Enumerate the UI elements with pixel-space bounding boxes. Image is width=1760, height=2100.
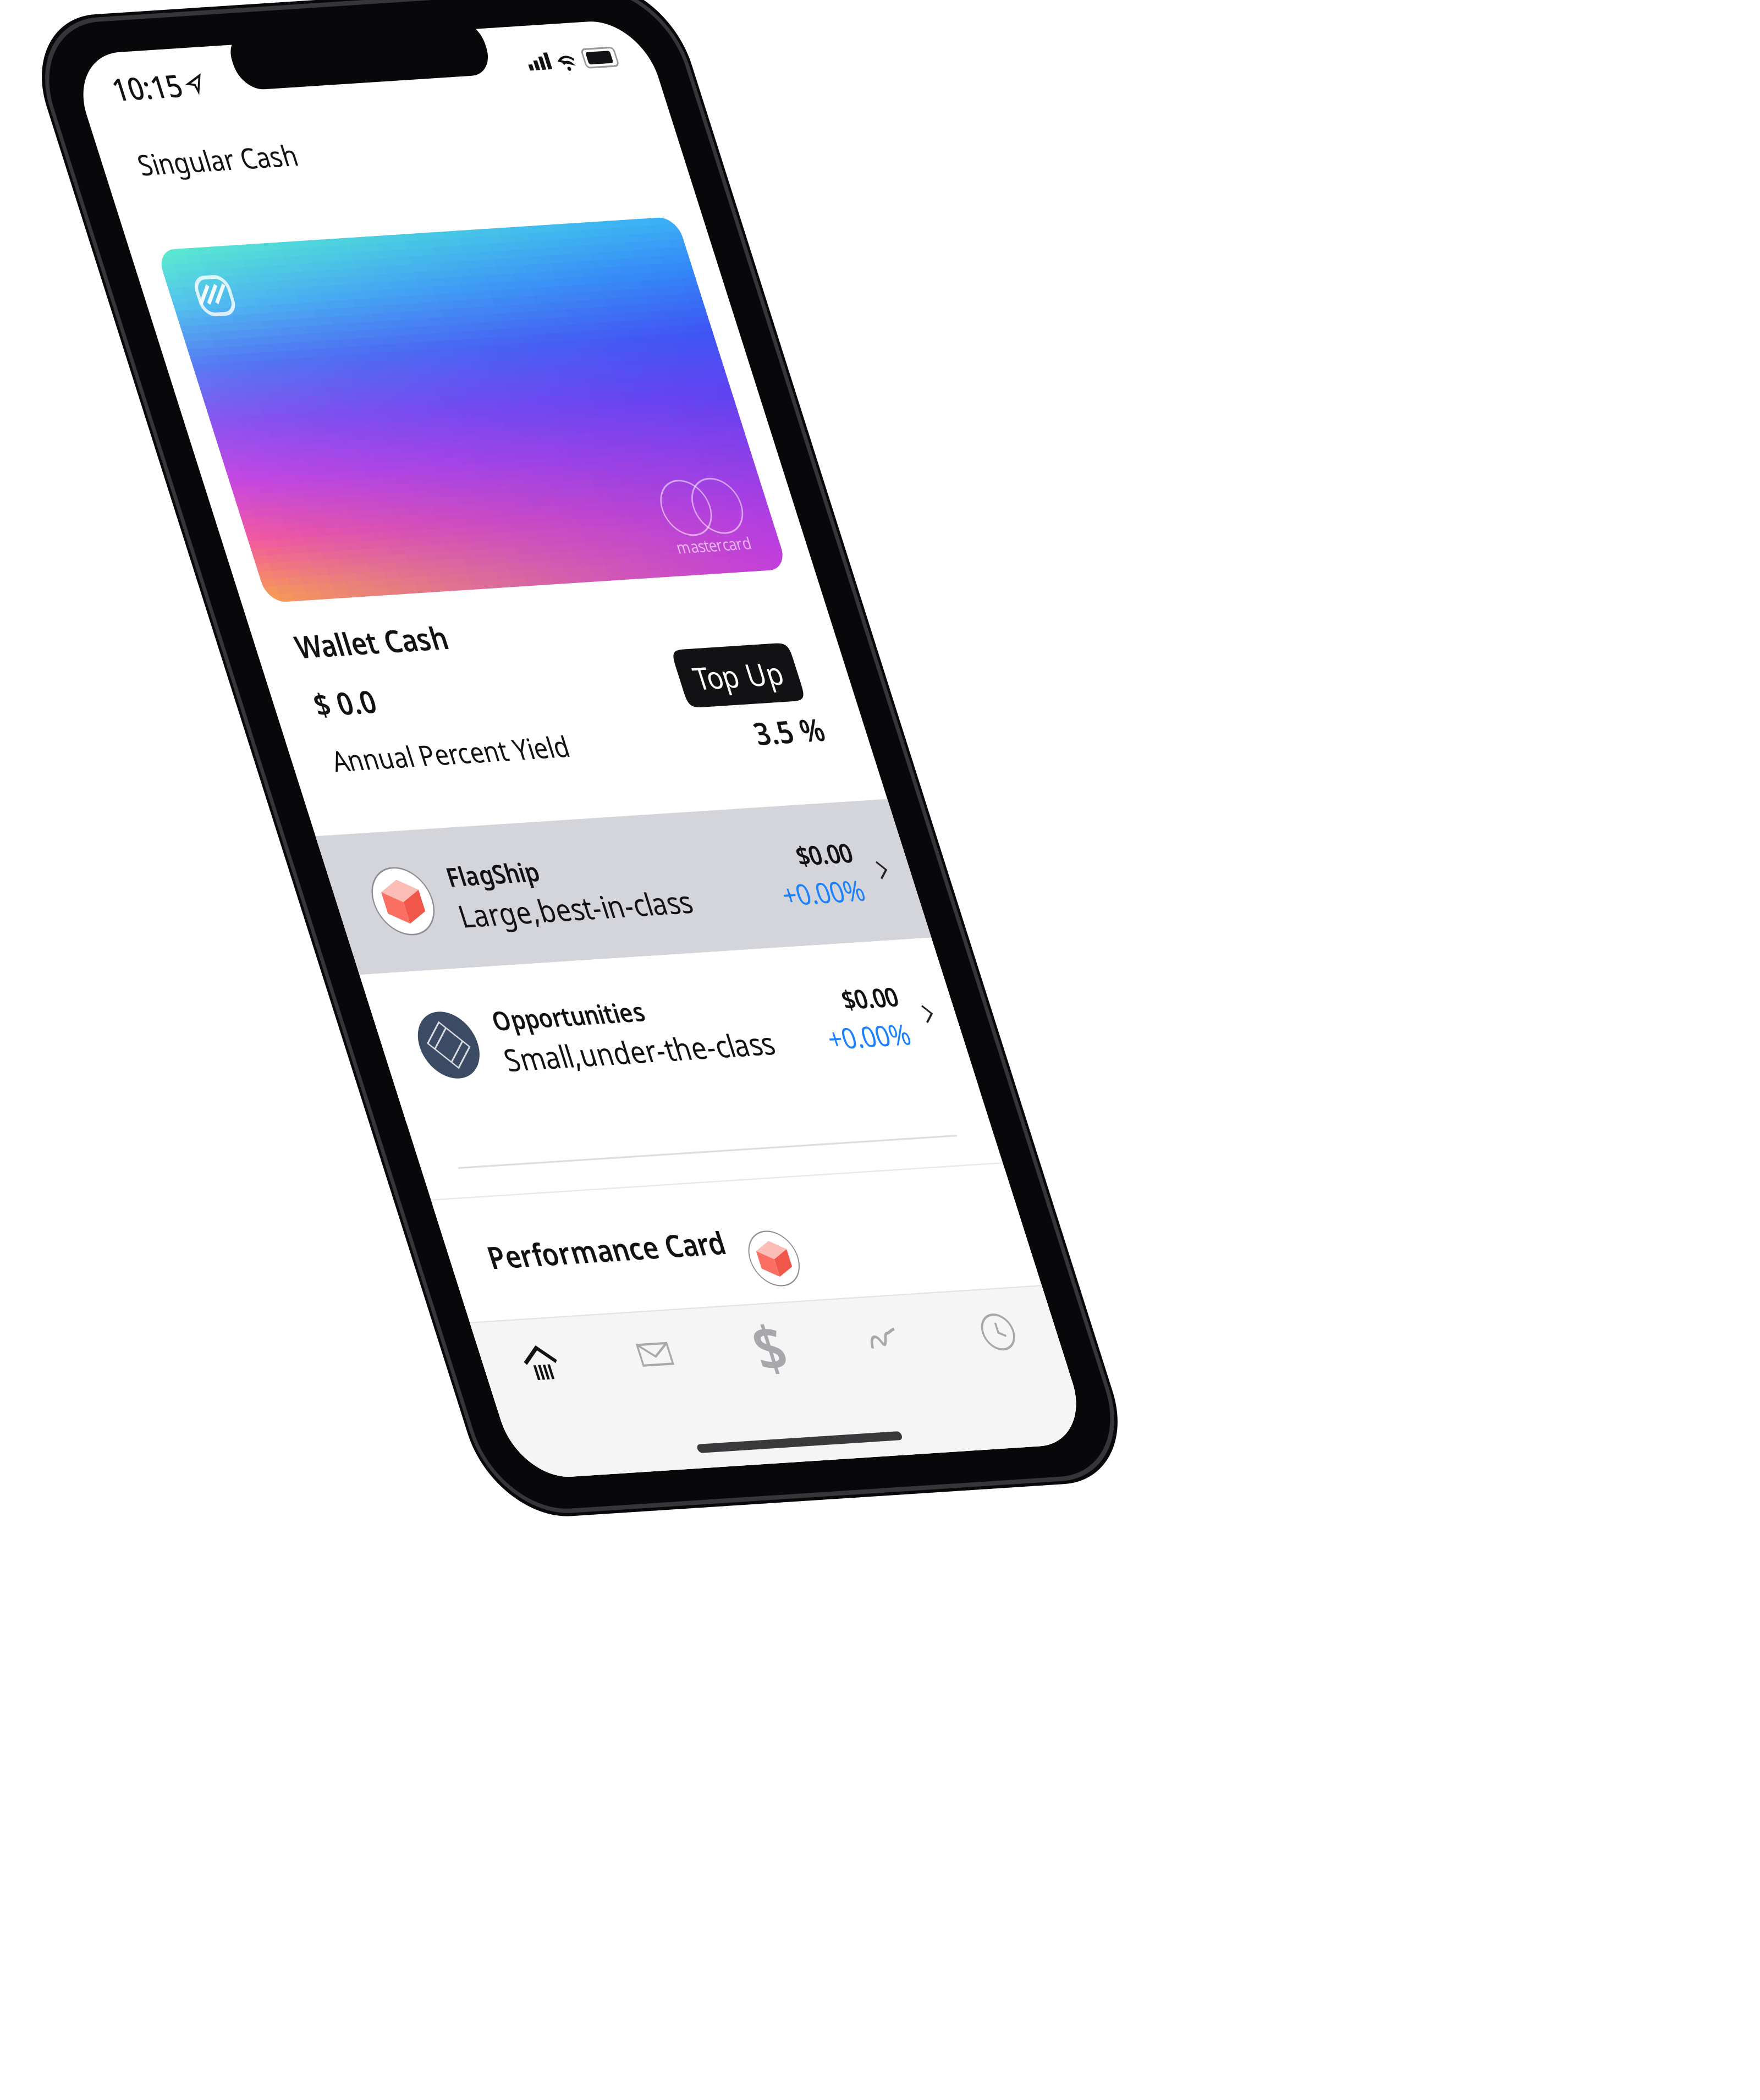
staticText: +0.00% xyxy=(158,266,188,278)
staticText: Small,under-the-class xyxy=(42,311,139,324)
button[interactable]: Performance Card xyxy=(0,359,206,425)
staticText: Annual Percent Yield xyxy=(14,216,100,228)
staticText: $0.00 xyxy=(168,300,188,311)
button[interactable]: History xyxy=(165,398,206,424)
staticText: Large,best-in-class xyxy=(42,266,125,278)
staticText: +0.00% xyxy=(158,311,188,323)
staticText: Singular Cash xyxy=(13,29,70,41)
button[interactable]: FlagShip xyxy=(0,245,206,288)
button[interactable]: Opportunities xyxy=(0,288,206,335)
staticText: mastercard xyxy=(160,160,187,167)
button[interactable]: Activity xyxy=(124,398,165,424)
staticText: $0.00 xyxy=(168,255,188,266)
